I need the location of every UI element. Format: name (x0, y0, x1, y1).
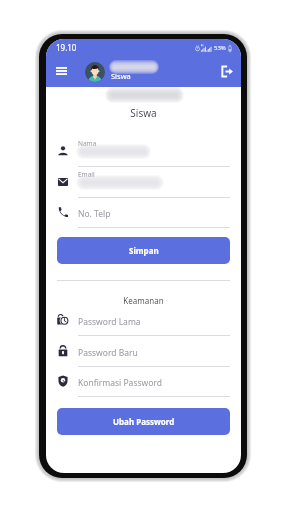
staticText: Nama (78, 139, 97, 148)
staticText: Email (78, 170, 95, 179)
button[interactable] (57, 203, 230, 227)
staticText: Keamanan (46, 295, 241, 306)
button[interactable]: Ubah Password (57, 408, 230, 435)
button[interactable]: Menu (51, 60, 72, 81)
staticText: Simpan (129, 245, 159, 256)
staticText: Password Baru (78, 347, 138, 359)
staticText: Siswa (46, 106, 241, 120)
button[interactable]: Logout (216, 61, 237, 82)
staticText: No. Telp (78, 208, 111, 220)
button[interactable] (57, 342, 230, 366)
button[interactable] (57, 311, 230, 335)
staticText: 19.10 (56, 42, 77, 53)
staticText: Password Lama (78, 316, 141, 328)
staticText: Ubah Password (113, 416, 175, 427)
button[interactable] (57, 372, 230, 396)
staticText: 53% (214, 44, 226, 52)
staticText: Siswa (111, 71, 131, 81)
staticText: Konfirmasi Password (78, 377, 162, 389)
button[interactable]: Simpan (57, 237, 230, 264)
